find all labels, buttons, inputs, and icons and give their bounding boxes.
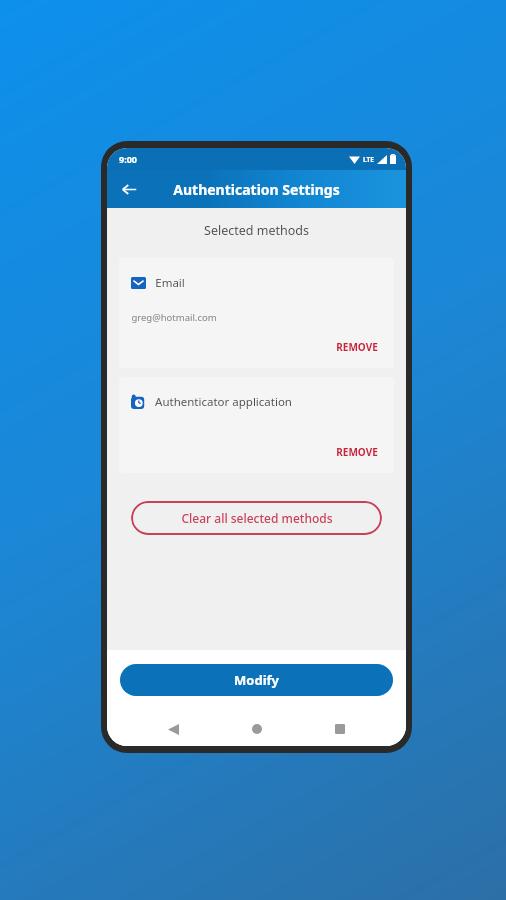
button[interactable]: Back	[113, 173, 145, 205]
button[interactable]: REMOVE	[332, 337, 382, 357]
staticText: LTE	[363, 155, 374, 164]
staticText: Email	[155, 275, 185, 291]
staticText: 9:00	[119, 153, 137, 165]
button[interactable]: Clear all selected methods	[131, 501, 382, 535]
button[interactable]: REMOVE	[332, 442, 382, 462]
staticText: Modify	[234, 671, 279, 689]
button[interactable]: Email	[119, 258, 394, 368]
button[interactable]: Recents	[323, 712, 357, 746]
staticText: REMOVE	[336, 445, 378, 459]
staticText: greg@hotmail.com	[131, 311, 217, 324]
staticText: REMOVE	[336, 340, 378, 354]
button[interactable]: Back	[156, 712, 190, 746]
button[interactable]: Authenticator application	[119, 377, 394, 473]
button[interactable]: Modify	[120, 664, 393, 696]
button[interactable]: Home	[240, 712, 274, 746]
staticText: Authenticator application	[155, 394, 292, 410]
staticText: Selected methods	[204, 222, 309, 239]
staticText: Clear all selected methods	[181, 510, 333, 526]
staticText: Authentication Settings	[173, 180, 340, 199]
